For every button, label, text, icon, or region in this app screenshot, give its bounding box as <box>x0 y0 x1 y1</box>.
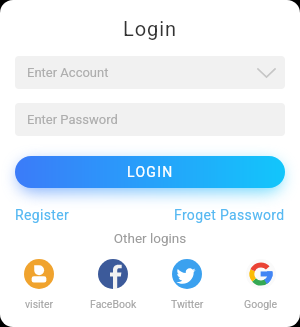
staticText: Twitter <box>171 298 204 310</box>
staticText: visiter <box>25 298 54 310</box>
button[interactable]: FaceBook <box>85 259 141 310</box>
button[interactable]: Google <box>233 259 289 310</box>
button[interactable]: visiter <box>11 259 67 310</box>
button[interactable]: LOGIN <box>15 156 285 188</box>
button[interactable]: Enter Account <box>15 56 285 89</box>
staticText: Enter Password <box>27 112 118 127</box>
button[interactable]: Register <box>15 207 70 223</box>
staticText: Other logins <box>0 230 300 246</box>
button[interactable]: Froget Password <box>174 207 285 223</box>
staticText: Login <box>0 17 300 40</box>
staticText: LOGIN <box>127 164 174 180</box>
staticText: Enter Account <box>27 65 109 80</box>
staticText: Google <box>244 298 278 310</box>
button[interactable]: Enter Password <box>15 103 285 136</box>
staticText: FaceBook <box>90 298 137 310</box>
button[interactable]: Twitter <box>159 259 215 310</box>
